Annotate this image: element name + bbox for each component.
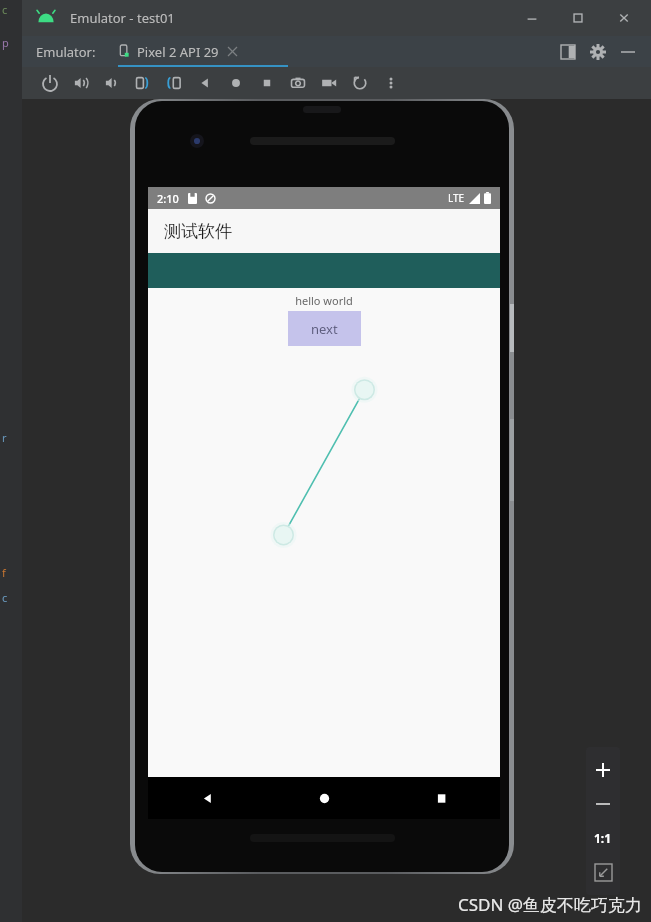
staticText: f (2, 565, 6, 580)
button[interactable]: Zoom in (586, 753, 620, 787)
button[interactable]: Zoom out (586, 787, 620, 821)
button[interactable]: Close (601, 0, 647, 36)
button[interactable]: Maximize (555, 0, 601, 36)
staticText: Pixel 2 API 29 (137, 43, 219, 61)
button[interactable]: Overview (251, 67, 282, 99)
button[interactable]: Hide (613, 37, 643, 67)
staticText: LTE (448, 191, 465, 205)
button[interactable]: 1:1 (586, 821, 620, 855)
staticText: c (2, 590, 8, 605)
button[interactable]: History (344, 67, 375, 99)
button[interactable]: Home (266, 777, 383, 819)
staticText: p (2, 35, 9, 50)
button[interactable]: Fit to screen (586, 855, 620, 889)
staticText: hello world (295, 293, 353, 308)
button[interactable]: Close tab (227, 46, 238, 57)
staticText: Emulator: (36, 43, 96, 61)
button[interactable]: Volume up (65, 67, 96, 99)
button[interactable]: Record (313, 67, 344, 99)
staticText: Emulator - test01 (70, 9, 175, 27)
button[interactable]: Recents (383, 777, 500, 819)
button[interactable]: Back (148, 777, 266, 819)
button[interactable]: Home (220, 67, 251, 99)
staticText: c (2, 2, 8, 17)
button[interactable]: More (375, 67, 406, 99)
button[interactable]: Rotate right (158, 67, 189, 99)
staticText: next (311, 320, 338, 338)
staticText: 2:10 (157, 191, 179, 206)
button[interactable]: Rotate left (127, 67, 158, 99)
staticText: 测试软件 (164, 221, 232, 242)
button[interactable]: Back (189, 67, 220, 99)
button[interactable]: Volume down (96, 67, 127, 99)
button[interactable]: Power (34, 67, 65, 99)
button[interactable]: Screenshot (282, 67, 313, 99)
button[interactable]: Minimize (509, 0, 555, 36)
staticText: 1:1 (594, 830, 612, 846)
staticText: CSDN @鱼皮不吃巧克力 (458, 893, 643, 916)
button[interactable]: Panel options (553, 37, 583, 67)
staticText: r (2, 430, 7, 445)
button[interactable]: next (288, 311, 361, 346)
button[interactable]: Settings (583, 37, 613, 67)
button[interactable]: Pixel 2 API 29 (118, 36, 238, 67)
